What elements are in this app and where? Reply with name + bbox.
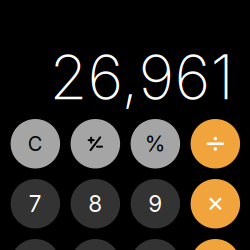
button[interactable]: % — [131, 119, 180, 168]
staticText: C — [28, 132, 43, 156]
button[interactable]: Plus or minus — [71, 119, 120, 168]
button[interactable]: 5 — [71, 239, 120, 250]
button[interactable]: 8 — [71, 179, 120, 228]
staticText: 8 — [88, 190, 102, 217]
staticText: 9 — [148, 190, 162, 217]
button[interactable]: Divide — [191, 119, 240, 168]
staticText: 26,961 — [50, 40, 234, 114]
button[interactable]: 7 — [11, 179, 60, 228]
staticText: 7 — [29, 190, 42, 217]
button[interactable]: 6 — [131, 239, 180, 250]
button[interactable]: 9 — [131, 179, 180, 228]
button[interactable]: Minus — [191, 239, 240, 250]
button[interactable]: 4 — [11, 239, 60, 250]
button[interactable]: Multiply — [191, 179, 240, 228]
staticText: % — [145, 131, 166, 157]
button[interactable]: C — [11, 119, 60, 168]
